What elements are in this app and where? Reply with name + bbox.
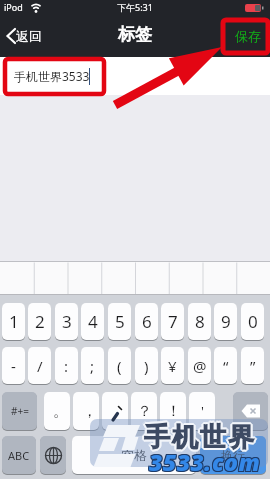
staticText: 手机世界 bbox=[144, 422, 256, 455]
button[interactable]: 。 bbox=[44, 392, 70, 430]
staticText: 2 bbox=[35, 310, 45, 333]
staticText: 换行 bbox=[221, 448, 245, 463]
staticText: / bbox=[37, 356, 43, 376]
button[interactable]: 保存 bbox=[235, 28, 261, 44]
staticText: 3533.com bbox=[150, 445, 262, 476]
staticText: 6 bbox=[142, 310, 152, 333]
staticText: 8 bbox=[195, 310, 205, 333]
staticText: 返回 bbox=[16, 28, 42, 44]
staticText: 标签 bbox=[118, 24, 152, 45]
staticText: 3533.com bbox=[150, 446, 262, 477]
staticText: 3533.com bbox=[148, 447, 260, 478]
staticText: ” bbox=[250, 356, 256, 376]
button[interactable]: 0 bbox=[241, 303, 264, 340]
staticText: 3533.com bbox=[148, 445, 260, 476]
button[interactable] bbox=[233, 392, 268, 430]
staticText: 。 bbox=[53, 402, 68, 421]
staticText: 3533.com bbox=[148, 446, 260, 477]
button[interactable]: 换行 bbox=[200, 436, 266, 474]
button[interactable]: ¥ bbox=[161, 347, 184, 384]
button[interactable]: 9 bbox=[214, 303, 237, 340]
staticText: iPod bbox=[4, 1, 23, 13]
button[interactable]: @ bbox=[188, 347, 211, 384]
staticText: - bbox=[11, 356, 16, 376]
staticText: 手机世界3533 bbox=[14, 68, 90, 84]
button[interactable]: 1 bbox=[2, 303, 25, 340]
staticText: 手机世界 bbox=[143, 421, 255, 454]
staticText: ！ bbox=[166, 402, 181, 421]
staticText: ) bbox=[144, 356, 149, 376]
staticText: 下午5:31 bbox=[117, 1, 153, 13]
staticText: ' bbox=[201, 402, 204, 420]
button[interactable]: 3 bbox=[55, 303, 78, 340]
button[interactable]: 5 bbox=[108, 303, 131, 340]
button[interactable]: / bbox=[28, 347, 51, 384]
staticText: 手机世界 bbox=[141, 421, 253, 454]
staticText: ？ bbox=[137, 402, 152, 421]
staticText: 手机世界 bbox=[144, 420, 256, 453]
button[interactable]: ！ bbox=[160, 392, 186, 430]
button[interactable]: - bbox=[2, 347, 25, 384]
button[interactable]: 2 bbox=[28, 303, 51, 340]
staticText: 3533.com bbox=[149, 446, 261, 477]
staticText: 5 bbox=[115, 310, 125, 333]
button[interactable]: ABC bbox=[2, 436, 36, 474]
button[interactable]: ” bbox=[241, 347, 264, 384]
staticText: ( bbox=[117, 356, 122, 376]
staticText: ¥ bbox=[168, 356, 177, 376]
button[interactable]: 6 bbox=[135, 303, 158, 340]
staticText: “ bbox=[223, 356, 229, 376]
staticText: @ bbox=[193, 356, 207, 376]
button[interactable]: ; bbox=[81, 347, 104, 384]
staticText: 4 bbox=[88, 310, 98, 333]
staticText: 1 bbox=[9, 310, 19, 333]
staticText: 3533.com bbox=[150, 447, 262, 478]
button[interactable]: #+= bbox=[2, 392, 37, 430]
staticText: ， bbox=[82, 402, 97, 421]
staticText: 3 bbox=[62, 310, 72, 333]
button[interactable]: 8 bbox=[188, 303, 211, 340]
button[interactable]: ) bbox=[135, 347, 158, 384]
staticText: 手机世界 bbox=[142, 420, 254, 453]
button[interactable]: 返回 bbox=[6, 28, 42, 44]
staticText: 保存 bbox=[235, 28, 261, 44]
button[interactable]: ' bbox=[189, 392, 215, 430]
staticText: 手机世界 bbox=[143, 423, 255, 456]
button[interactable]: 空格 bbox=[72, 436, 196, 474]
staticText: 3533.com bbox=[149, 447, 261, 478]
staticText: 7 bbox=[168, 310, 178, 333]
staticText: 0 bbox=[248, 310, 258, 333]
staticText: ABC bbox=[8, 448, 30, 463]
staticText: ; bbox=[90, 356, 95, 376]
staticText: 空格 bbox=[121, 447, 147, 463]
button[interactable]: 7 bbox=[161, 303, 184, 340]
staticText: #+= bbox=[11, 404, 29, 418]
staticText: 3533.com bbox=[149, 445, 261, 476]
button[interactable]: ？ bbox=[131, 392, 157, 430]
button[interactable] bbox=[40, 436, 66, 474]
button[interactable] bbox=[102, 392, 128, 430]
button[interactable]: : bbox=[55, 347, 78, 384]
button[interactable]: 4 bbox=[81, 303, 104, 340]
staticText: 9 bbox=[221, 310, 231, 333]
button[interactable]: “ bbox=[214, 347, 237, 384]
staticText: 手机世界 bbox=[142, 422, 254, 455]
staticText: 手机世界 bbox=[143, 419, 255, 452]
button[interactable]: ， bbox=[73, 392, 99, 430]
button[interactable]: ( bbox=[108, 347, 131, 384]
staticText: : bbox=[64, 356, 69, 376]
staticText: 手机世界 bbox=[145, 421, 257, 454]
